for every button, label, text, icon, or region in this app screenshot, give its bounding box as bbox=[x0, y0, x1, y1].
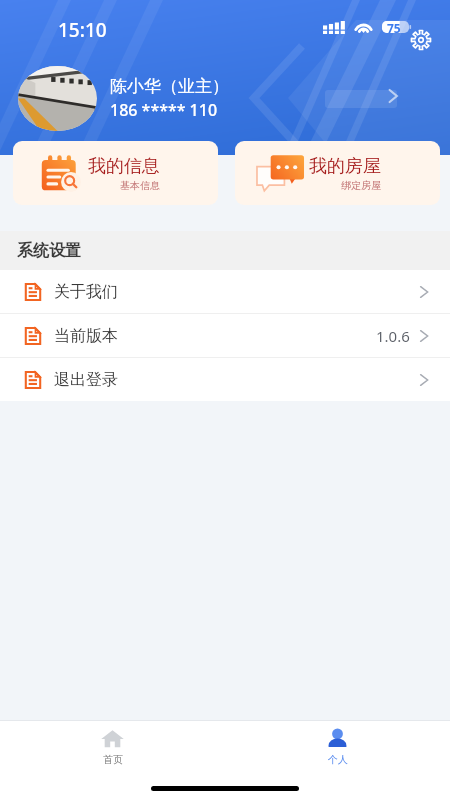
button[interactable]: 陈小华（业主） bbox=[18, 66, 229, 131]
button[interactable]: 个人 bbox=[225, 721, 450, 772]
staticText: 关于我们 bbox=[54, 282, 118, 302]
staticText: 基本信息 bbox=[120, 179, 160, 192]
staticText: 1.0.6 bbox=[376, 326, 410, 346]
button[interactable]: 我的房屋 bbox=[235, 141, 440, 205]
staticText: 186 ***** 110 bbox=[110, 99, 218, 121]
staticText: 绑定房屋 bbox=[341, 179, 381, 192]
staticText: 首页 bbox=[103, 753, 123, 766]
button[interactable]: 退出登录 bbox=[0, 358, 450, 401]
staticText: 陈小华（业主） bbox=[110, 76, 229, 97]
staticText: 退出登录 bbox=[54, 370, 118, 390]
staticText: 75 bbox=[387, 20, 401, 36]
button[interactable]: 首页 bbox=[0, 721, 225, 772]
staticText: 系统设置 bbox=[17, 241, 81, 261]
staticText: 个人 bbox=[328, 753, 348, 766]
staticText: 我的房屋 bbox=[309, 155, 381, 178]
staticText: 当前版本 bbox=[54, 326, 118, 346]
button[interactable]: Settings bbox=[406, 25, 436, 55]
button[interactable]: 关于我们 bbox=[0, 270, 450, 313]
staticText: 我的信息 bbox=[88, 155, 160, 178]
button[interactable]: 当前版本 bbox=[0, 314, 450, 357]
button[interactable]: More bbox=[381, 84, 405, 108]
button[interactable]: 我的信息 bbox=[13, 141, 218, 205]
staticText: 15:10 bbox=[58, 17, 107, 43]
